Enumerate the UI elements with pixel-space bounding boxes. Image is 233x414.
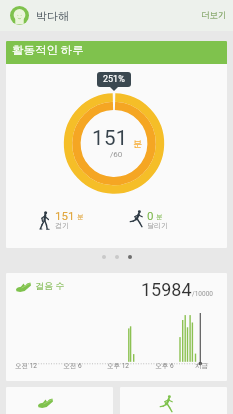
staticText: 걸음 수: [35, 280, 65, 291]
button[interactable]: 걸음 수: [6, 273, 227, 381]
staticText: 0: [147, 209, 154, 222]
button[interactable]: 더보기: [195, 6, 233, 25]
staticText: 151: [55, 209, 75, 222]
staticText: 분: [156, 213, 163, 221]
staticText: 활동적인 하루: [12, 43, 84, 57]
button[interactable]: 0: [130, 209, 168, 231]
staticText: 151: [92, 126, 128, 150]
staticText: 더보기: [201, 10, 227, 21]
button[interactable]: [6, 387, 113, 414]
staticText: 오전 6: [63, 362, 82, 370]
staticText: 박다해: [36, 9, 69, 23]
staticText: 251%: [103, 74, 125, 85]
staticText: 걷기: [55, 221, 69, 230]
button[interactable]: 활동적인 하루: [6, 41, 227, 248]
staticText: 분: [133, 138, 142, 149]
staticText: 오후 12: [107, 362, 129, 370]
staticText: /60: [110, 150, 123, 159]
staticText: 15984: [141, 279, 192, 300]
button[interactable]: Profile: [10, 6, 29, 25]
staticText: /10000: [192, 290, 213, 298]
staticText: 지금: [195, 362, 208, 370]
staticText: 분: [77, 213, 84, 221]
button[interactable]: 151: [39, 209, 84, 231]
staticText: 오전 12: [15, 362, 37, 370]
staticText: 달리기: [147, 221, 168, 230]
staticText: 오후 6: [155, 362, 174, 370]
button[interactable]: [120, 387, 227, 414]
